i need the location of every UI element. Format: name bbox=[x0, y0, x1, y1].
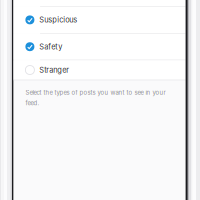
button[interactable]: Safety bbox=[14, 34, 186, 60]
staticText: Select the types of posts you want to se… bbox=[25, 89, 165, 96]
button[interactable]: Stranger bbox=[14, 60, 186, 80]
button[interactable]: Suspicious bbox=[14, 7, 186, 33]
staticText: Safety bbox=[39, 42, 62, 51]
staticText: Suspicious bbox=[39, 15, 77, 24]
staticText: Stranger bbox=[39, 65, 69, 74]
staticText: feed. bbox=[25, 100, 39, 107]
